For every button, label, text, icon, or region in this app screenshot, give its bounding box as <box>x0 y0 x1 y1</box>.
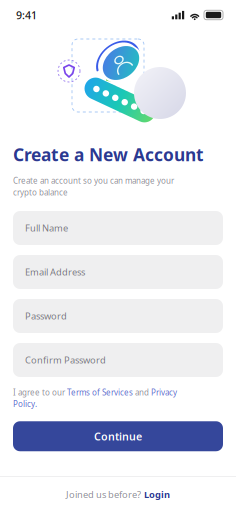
staticText: Create a New Account <box>13 143 204 166</box>
staticText: 9:41 <box>16 8 37 22</box>
staticText: Email Address <box>25 266 85 278</box>
staticText: I agree to our <box>13 387 67 398</box>
staticText: Full Name <box>25 222 68 234</box>
staticText: Policy. <box>13 399 37 409</box>
staticText: and <box>133 387 151 398</box>
button[interactable]: Login <box>144 488 170 501</box>
staticText: Password <box>25 310 67 322</box>
button[interactable]: Password <box>13 299 223 333</box>
staticText: Login <box>144 488 170 501</box>
button[interactable]: Terms of Services <box>67 387 133 398</box>
staticText: Continue <box>94 429 142 443</box>
staticText: crypto balance <box>13 187 68 198</box>
staticText: Terms of Services <box>67 387 133 398</box>
staticText: Create an account so you can manage your <box>13 175 174 186</box>
button[interactable]: Email Address <box>13 255 223 289</box>
button[interactable]: Privacy <box>151 387 177 398</box>
button[interactable]: Continue <box>13 421 223 451</box>
button[interactable]: Full Name <box>13 211 223 245</box>
button[interactable]: Policy. <box>13 399 37 409</box>
staticText: Joined us before? <box>66 488 141 501</box>
staticText: Confirm Password <box>25 354 106 366</box>
button[interactable]: Confirm Password <box>13 343 223 377</box>
staticText: Privacy <box>151 387 177 398</box>
